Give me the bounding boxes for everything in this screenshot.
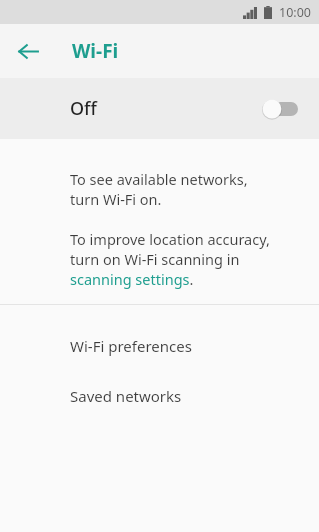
staticText: 10:00 — [279, 4, 311, 21]
staticText: Wi-Fi preferences — [70, 336, 192, 356]
staticText: Off — [70, 96, 97, 121]
button[interactable]: Saved networks — [0, 359, 319, 409]
staticText: Saved networks — [70, 386, 182, 406]
button[interactable]: Wi-Fi preferences — [0, 305, 319, 359]
staticText: Wi-Fi — [72, 38, 119, 64]
staticText: To see available networks, turn Wi-Fi on… — [70, 169, 248, 209]
button[interactable]: To improve location accuracy, turn on Wi… — [70, 229, 270, 289]
button[interactable]: Off — [0, 78, 319, 139]
button[interactable]: Back — [8, 31, 48, 71]
